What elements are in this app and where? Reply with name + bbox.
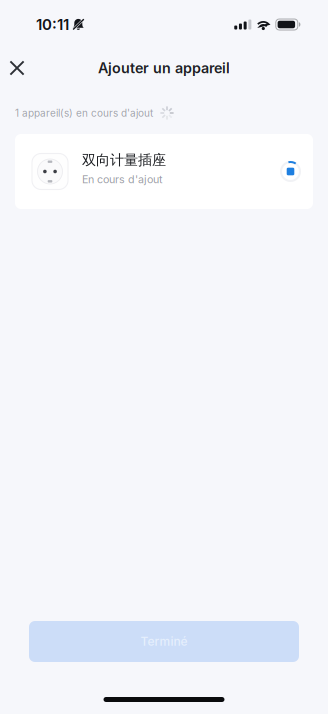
button[interactable]: Fermer (1, 51, 33, 85)
button[interactable]: Terminé (29, 621, 299, 662)
button[interactable]: Arrêter l'ajout (280, 154, 301, 188)
staticText: 双向计量插座 (82, 151, 166, 169)
staticText: 1 appareil(s) en cours d'ajout (15, 107, 153, 119)
staticText: En cours d'ajout (82, 173, 163, 186)
staticText: Terminé (140, 634, 187, 649)
staticText: Ajouter un appareil (98, 59, 230, 77)
staticText: 10:11 (36, 15, 69, 33)
